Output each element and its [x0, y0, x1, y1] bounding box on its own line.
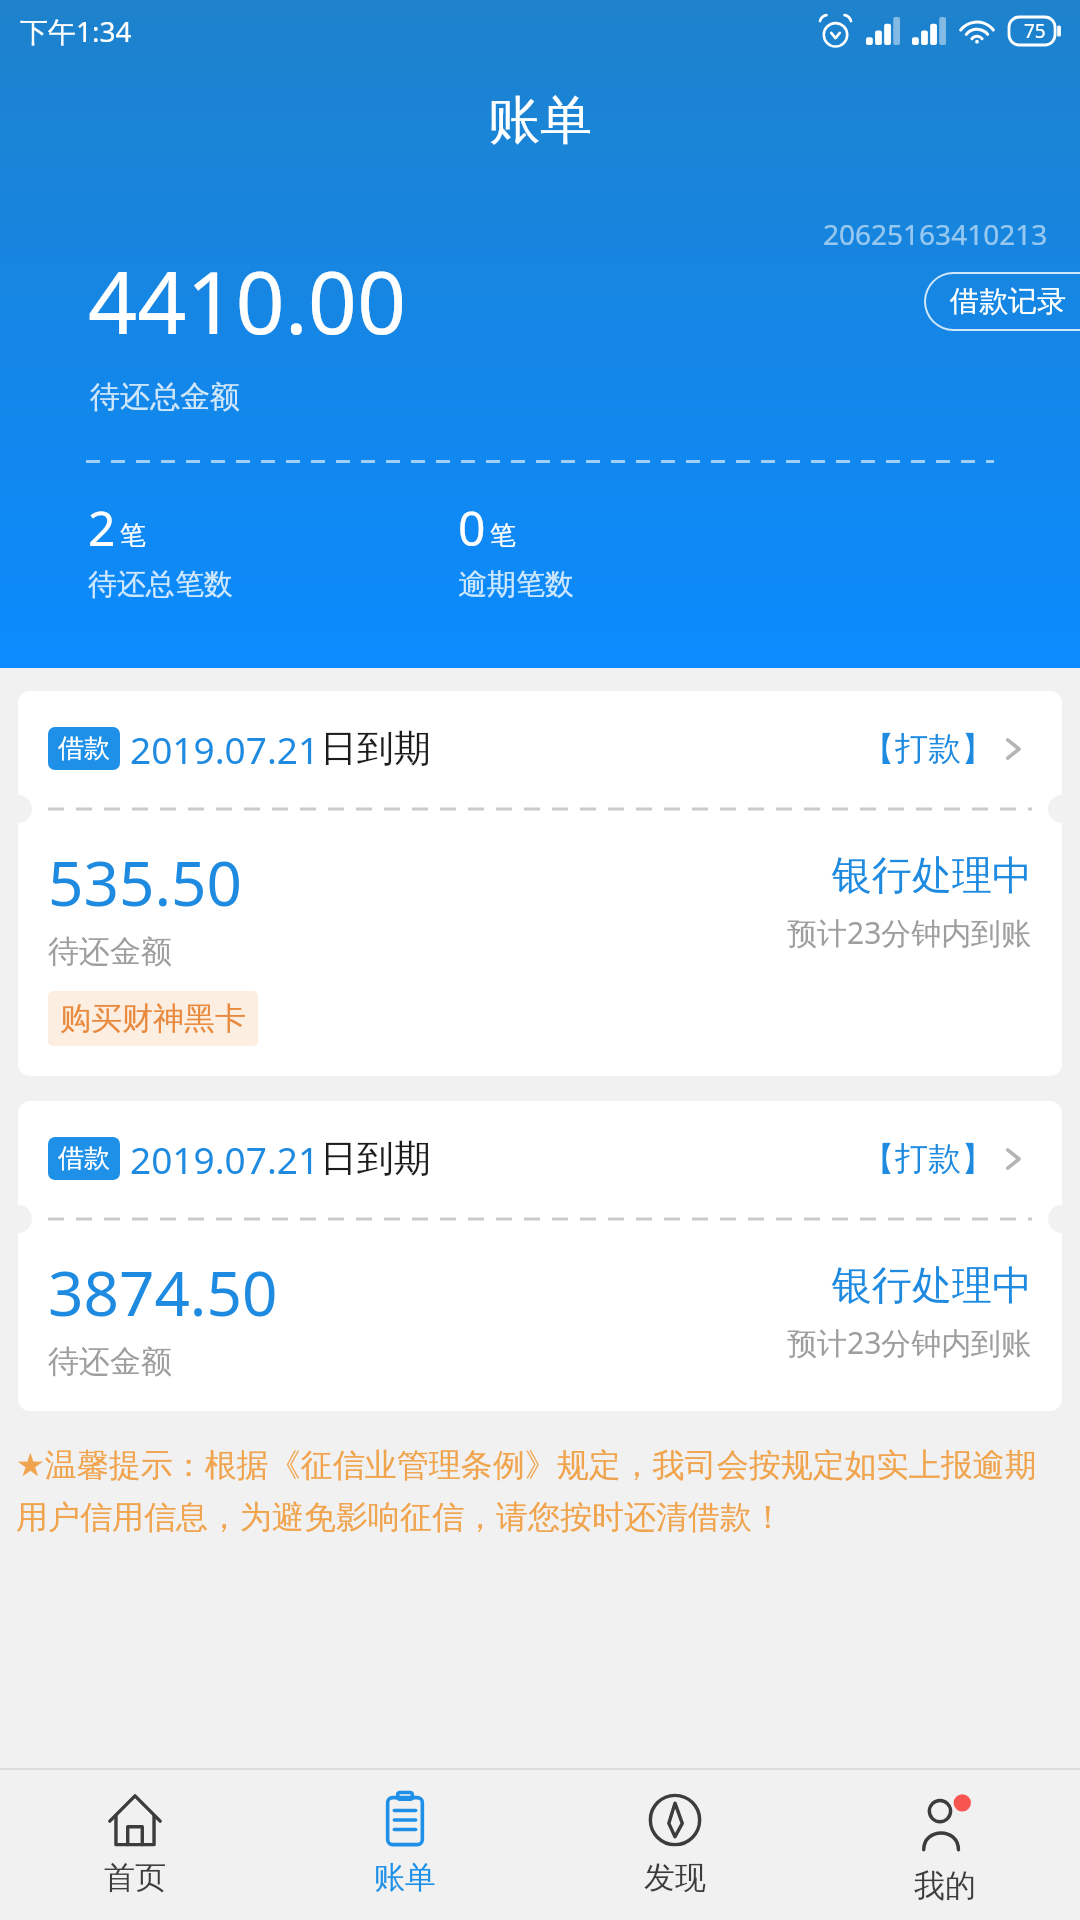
staticText: 预计23分钟内到账 — [787, 912, 1032, 953]
staticText: 【打款】 — [862, 1138, 994, 1180]
staticText: 首页 — [104, 1858, 166, 1897]
staticText: 借款 — [58, 1142, 110, 1175]
staticText: 535.50 — [48, 840, 242, 924]
button[interactable]: 借款记录 — [924, 272, 1080, 331]
other: 我的 — [917, 1796, 973, 1852]
staticText: 待还金额 — [48, 1342, 172, 1381]
staticText: 下午1:34 — [20, 12, 132, 50]
staticText: 待还总金额 — [90, 378, 240, 416]
other: 账单 — [377, 1792, 433, 1848]
staticText: 75 — [1024, 18, 1046, 44]
staticText: 笔 — [120, 519, 146, 552]
staticText: 账单 — [374, 1858, 436, 1897]
staticText: 日到期 — [320, 725, 431, 772]
staticText: 银行处理中 — [832, 850, 1032, 900]
button[interactable]: 发现 — [540, 1770, 810, 1920]
other: 首页 — [107, 1792, 163, 1848]
button[interactable]: 购买财神黑卡 — [48, 991, 258, 1046]
button[interactable]: 借款 — [18, 1101, 1062, 1411]
staticText: 2019.07.21 — [130, 724, 320, 774]
staticText: 借款记录 — [950, 283, 1066, 320]
staticText: 0 — [458, 495, 486, 560]
staticText: 逾期笔数 — [458, 566, 574, 603]
staticText: 我的 — [914, 1866, 976, 1905]
staticText: 3874.50 — [48, 1250, 278, 1334]
other: 发现 — [647, 1792, 703, 1848]
button[interactable]: 借款 — [18, 691, 1062, 1076]
staticText: 日到期 — [320, 1135, 431, 1182]
other: 闹钟 — [819, 15, 852, 48]
staticText: 笔 — [490, 519, 516, 552]
staticText: 2019.07.21 — [130, 1134, 320, 1184]
staticText: 20625163410213 — [823, 215, 1048, 253]
staticText: 购买财神黑卡 — [60, 999, 246, 1038]
staticText: 预计23分钟内到账 — [787, 1322, 1032, 1363]
staticText: 4410.00 — [88, 242, 407, 359]
button[interactable]: 我的 — [810, 1770, 1080, 1920]
staticText: 借款 — [58, 732, 110, 765]
button[interactable]: 首页 — [0, 1770, 270, 1920]
staticText: 待还金额 — [48, 932, 172, 971]
staticText: 2 — [88, 495, 116, 560]
button[interactable]: 账单 — [270, 1770, 540, 1920]
staticText: 待还总笔数 — [88, 566, 233, 603]
staticText: 发现 — [644, 1858, 706, 1897]
staticText: 账单 — [488, 88, 592, 154]
staticText: 【打款】 — [862, 728, 994, 770]
staticText: ★温馨提示：根据《征信业管理条例》规定，我司会按规定如实上报逾期用户信用信息，为… — [16, 1445, 1064, 1537]
staticText: 银行处理中 — [832, 1260, 1032, 1310]
